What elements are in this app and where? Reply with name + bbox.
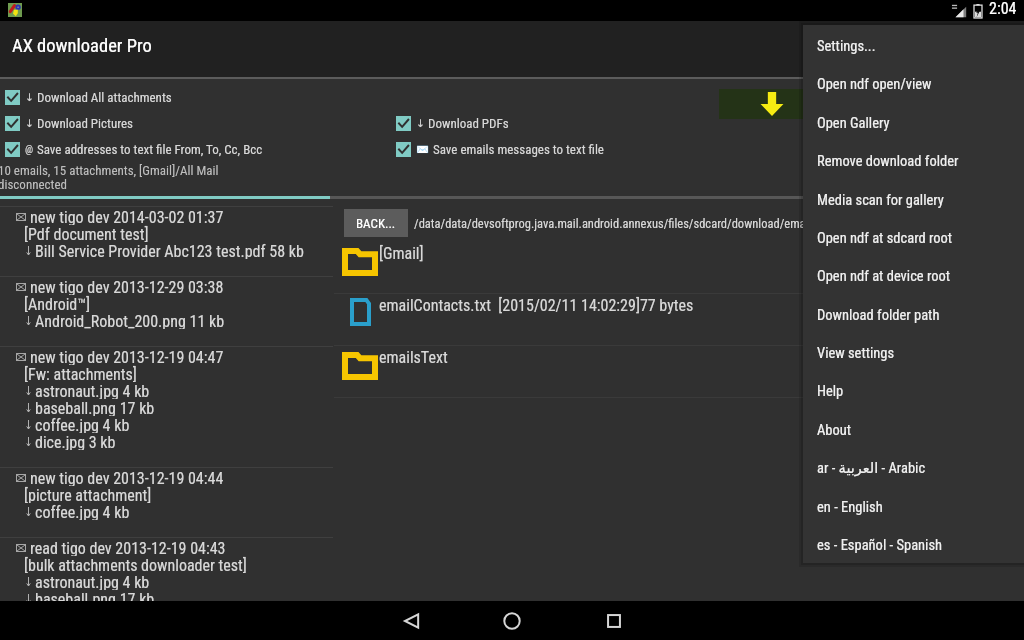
staticText: astronaut.jpg 4 kb [35, 573, 150, 590]
staticText: AX downloader Pro [12, 35, 152, 57]
staticText: emailsText [379, 348, 448, 367]
button[interactable]: View settings [803, 334, 1024, 372]
staticText: BACK... [356, 216, 396, 231]
staticText: ar - العربية - Arabic [817, 460, 926, 477]
button[interactable]: Remove download folder [803, 142, 1024, 180]
staticText: [bulk attachments downloader test] [24, 556, 247, 573]
button[interactable]: Open Gallery [803, 104, 1024, 142]
staticText: Download All attachments [37, 90, 172, 105]
button[interactable]: ✉ [396, 141, 604, 157]
staticText: [Pdf document test] [24, 225, 149, 242]
button[interactable]: Settings... [803, 27, 1024, 65]
staticText: dice.jpg 3 kb [35, 433, 116, 450]
button[interactable]: ar - العربية - Arabic [803, 449, 1024, 487]
staticText: astronaut.jpg 4 kb [35, 382, 150, 399]
staticText: emailContacts.txt [2015/02/11 14:02:29]7… [379, 296, 694, 315]
staticText: new tigo dev 2014-03-02 01:37 [30, 208, 224, 225]
staticText: Bill Service Provider Abc123 test.pdf 58… [35, 242, 304, 259]
staticText: Help [817, 383, 844, 400]
button[interactable]: Download attachments [719, 89, 847, 119]
button[interactable]: BACK... [344, 209, 408, 237]
button[interactable]: new tigo dev 2014-03-02 01:37 [0, 207, 333, 276]
button[interactable]: Open ndf at device root [803, 257, 1024, 295]
staticText: Download PDFs [428, 116, 509, 131]
staticText: Save emails messages to text file [433, 142, 604, 157]
staticText: ↓ [416, 117, 425, 129]
button[interactable]: ↓ [5, 115, 134, 131]
staticText: @ [25, 143, 34, 155]
staticText: read tigo dev 2013-12-19 04:43 [30, 539, 226, 556]
staticText: baseball.png 17 kb [35, 590, 155, 607]
button[interactable]: Open ndf at sdcard root [803, 219, 1024, 257]
staticText: Settings... [817, 38, 876, 55]
staticText: Open ndf at device root [817, 268, 951, 285]
staticText: 10 emails, 15 attachments, [Gmail]/All M… [0, 163, 219, 178]
staticText: Open ndf at sdcard root [817, 230, 953, 247]
staticText: coffee.jpg 4 kb [35, 503, 130, 520]
staticText: Download folder path [817, 307, 940, 324]
staticText: View settings [817, 345, 895, 362]
button[interactable]: read tigo dev 2013-12-19 04:43 [0, 538, 333, 640]
staticText: baseball.png 17 kb [35, 399, 155, 416]
button[interactable]: Open ndf open/view [803, 65, 1024, 103]
button[interactable]: ↓ [396, 115, 509, 131]
button[interactable]: Help [803, 372, 1024, 410]
button[interactable]: @ [5, 141, 263, 157]
button[interactable]: Media scan for gallery [803, 181, 1024, 219]
staticText: Download Pictures [37, 116, 134, 131]
staticText: [Android™] [24, 295, 91, 312]
button[interactable]: [Gmail] [334, 242, 1024, 294]
button[interactable]: emailContacts.txt [2015/02/11 14:02:29]7… [334, 294, 1024, 346]
staticText: /data/data/devsoftprog.java.mail.android… [414, 216, 806, 231]
staticText: es - Español - Spanish [817, 537, 943, 554]
staticText: [picture attachment] [24, 486, 152, 503]
button[interactable]: new tigo dev 2013-12-29 03:38 [0, 277, 333, 346]
staticText: new tigo dev 2013-12-19 04:47 [30, 348, 224, 365]
button[interactable]: Back [378, 601, 446, 640]
button[interactable]: new tigo dev 2013-12-19 04:44 [0, 468, 333, 537]
staticText: ✉ [416, 143, 430, 155]
staticText: new tigo dev 2013-12-19 04:44 [30, 469, 224, 486]
staticText: 2:04 [989, 0, 1017, 18]
staticText: Open ndf open/view [817, 76, 932, 93]
staticText: Android_Robot_200.png 11 kb [35, 312, 225, 329]
staticText: coffee.jpg 4 kb [35, 416, 130, 433]
button[interactable]: es - Español - Spanish [803, 526, 1024, 564]
staticText: [Gmail] [379, 244, 424, 263]
staticText: new tigo dev 2013-12-29 03:38 [30, 278, 224, 295]
staticText: [Fw: attachments] [24, 365, 137, 382]
button[interactable]: new tigo dev 2013-12-19 04:47 [0, 347, 333, 467]
staticText: disconnected [0, 177, 67, 192]
button[interactable]: About [803, 411, 1024, 449]
staticText: Save addresses to text file From, To, Cc… [37, 142, 263, 157]
staticText: Media scan for gallery [817, 192, 944, 209]
button[interactable]: Download folder path [803, 296, 1024, 334]
staticText: Open Gallery [817, 115, 890, 132]
button[interactable]: ↓ [5, 89, 172, 105]
staticText: About [817, 422, 852, 439]
staticText: en - English [817, 499, 883, 516]
button[interactable]: Recent apps [580, 601, 648, 640]
staticText: Remove download folder [817, 153, 959, 170]
button[interactable]: Home [478, 601, 546, 640]
staticText: ↓ [25, 117, 34, 129]
staticText: ↓ [25, 91, 34, 103]
button[interactable]: en - English [803, 488, 1024, 526]
button[interactable]: emailsText [334, 346, 1024, 398]
